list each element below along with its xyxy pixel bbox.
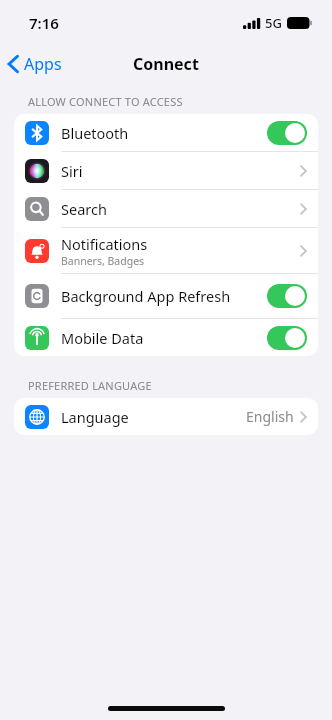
staticText: Search <box>61 199 107 219</box>
staticText: Background App Refresh <box>61 286 231 306</box>
staticText: Mobile Data <box>61 328 144 348</box>
staticText: Apps <box>24 53 62 75</box>
staticText: PREFERRED LANGUAGE <box>28 378 152 393</box>
button[interactable]: Bluetooth <box>14 114 318 152</box>
staticText: Connect <box>133 53 199 75</box>
staticText: ALLOW CONNECT TO ACCESS <box>28 94 183 109</box>
button[interactable]: Mobile Data <box>14 319 318 356</box>
button[interactable]: Toggle on <box>267 326 307 350</box>
staticText: Notifications <box>61 234 148 254</box>
staticText: 7:16 <box>29 13 59 33</box>
button[interactable]: Notifications <box>14 228 318 274</box>
staticText: Language <box>61 407 129 427</box>
button[interactable]: Siri <box>14 152 318 190</box>
staticText: Banners, Badges <box>61 254 145 268</box>
button[interactable]: Language <box>14 398 318 435</box>
button[interactable]: Toggle on <box>267 121 307 145</box>
button[interactable]: Search <box>14 190 318 228</box>
button[interactable]: Background App Refresh <box>14 274 318 319</box>
staticText: English <box>246 407 294 426</box>
staticText: 5G <box>265 14 282 32</box>
button[interactable]: Apps <box>0 44 70 84</box>
staticText: Bluetooth <box>61 123 129 143</box>
button[interactable]: Toggle on <box>267 284 307 308</box>
staticText: Siri <box>61 161 83 181</box>
